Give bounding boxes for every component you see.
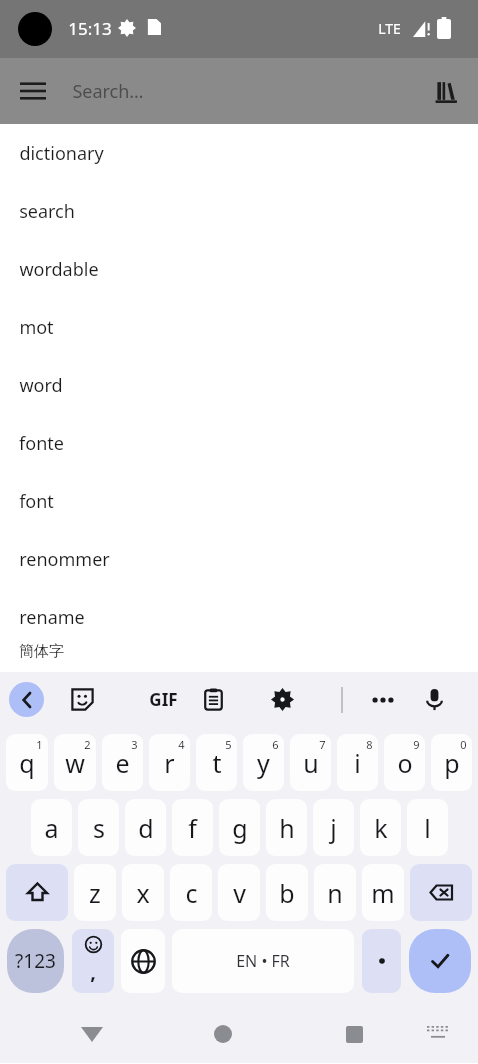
button[interactable]: k bbox=[360, 799, 401, 856]
staticText: n bbox=[327, 876, 343, 910]
button[interactable]: c bbox=[170, 864, 212, 921]
button[interactable]: Emoji and comma bbox=[72, 929, 114, 993]
staticText: wordable bbox=[19, 257, 99, 282]
button[interactable]: r bbox=[149, 734, 190, 791]
button[interactable]: Recent apps bbox=[330, 1010, 378, 1058]
staticText: 9 bbox=[413, 737, 420, 752]
staticText: 7 bbox=[319, 737, 326, 752]
button[interactable]: EN • FR bbox=[172, 929, 354, 993]
staticText: m bbox=[371, 876, 395, 910]
button[interactable]: fonte bbox=[0, 414, 478, 472]
button[interactable]: Clipboard bbox=[196, 682, 231, 717]
button[interactable]: Library bbox=[416, 58, 478, 124]
button[interactable]: Change language bbox=[121, 929, 165, 993]
staticText: s bbox=[93, 811, 105, 845]
button[interactable]: mot bbox=[0, 298, 478, 356]
staticText: 1 bbox=[36, 737, 43, 752]
button[interactable]: e bbox=[102, 734, 143, 791]
staticText: font bbox=[19, 489, 54, 514]
staticText: , bbox=[90, 958, 96, 985]
staticText: p bbox=[444, 746, 460, 780]
staticText: word bbox=[19, 373, 63, 398]
staticText: b bbox=[279, 876, 295, 910]
button[interactable]: ?123 bbox=[7, 929, 64, 993]
button[interactable]: g bbox=[219, 799, 260, 856]
button[interactable]: u bbox=[290, 734, 331, 791]
staticText: u bbox=[303, 746, 319, 780]
staticText: 15:13 bbox=[68, 17, 112, 40]
staticText: 4 bbox=[178, 737, 185, 752]
staticText: z bbox=[89, 876, 101, 910]
button[interactable]: w bbox=[54, 734, 96, 791]
staticText: dictionary bbox=[19, 141, 104, 166]
button[interactable]: j bbox=[313, 799, 354, 856]
button[interactable]: f bbox=[172, 799, 213, 856]
button[interactable]: s bbox=[78, 799, 119, 856]
staticText: g bbox=[232, 811, 248, 845]
staticText: renommer bbox=[19, 547, 110, 572]
button[interactable]: Shift bbox=[6, 864, 68, 921]
button[interactable]: Voice input bbox=[417, 682, 452, 717]
button[interactable]: a bbox=[31, 799, 72, 856]
button[interactable]: x bbox=[122, 864, 164, 921]
staticText: 3 bbox=[131, 737, 138, 752]
staticText: j bbox=[330, 811, 337, 845]
button[interactable]: search bbox=[0, 182, 478, 240]
button[interactable]: GIF bbox=[140, 682, 186, 717]
button[interactable]: wordable bbox=[0, 240, 478, 298]
button[interactable]: dictionary bbox=[0, 124, 478, 182]
button[interactable]: v bbox=[218, 864, 260, 921]
button[interactable]: h bbox=[266, 799, 307, 856]
button[interactable]: Back bbox=[9, 682, 44, 717]
staticText: rename bbox=[19, 605, 85, 630]
button[interactable]: More options bbox=[364, 682, 402, 717]
staticText: x bbox=[136, 876, 150, 910]
staticText: y bbox=[257, 746, 270, 780]
staticText: i bbox=[354, 746, 361, 780]
button[interactable]: q bbox=[6, 734, 48, 791]
button[interactable]: 簡体字 bbox=[0, 646, 478, 672]
staticText: h bbox=[279, 811, 295, 845]
button[interactable]: word bbox=[0, 356, 478, 414]
staticText: 2 bbox=[84, 737, 91, 752]
button[interactable]: n bbox=[314, 864, 356, 921]
button[interactable]: m bbox=[362, 864, 404, 921]
button[interactable]: l bbox=[407, 799, 448, 856]
button[interactable]: Search… bbox=[66, 58, 416, 124]
button[interactable]: Enter bbox=[409, 929, 471, 993]
staticText: mot bbox=[19, 315, 54, 340]
button[interactable]: renommer bbox=[0, 530, 478, 588]
button[interactable]: rename bbox=[0, 588, 478, 646]
staticText: e bbox=[115, 746, 130, 780]
staticText: o bbox=[397, 746, 413, 780]
staticText: GIF bbox=[149, 688, 178, 711]
button[interactable]: z bbox=[74, 864, 116, 921]
staticText: w bbox=[65, 746, 85, 780]
button[interactable]: y bbox=[243, 734, 284, 791]
button[interactable]: t bbox=[196, 734, 237, 791]
staticText: fonte bbox=[19, 431, 64, 456]
button[interactable] bbox=[362, 929, 401, 993]
button[interactable]: p bbox=[431, 734, 472, 791]
button[interactable]: b bbox=[266, 864, 308, 921]
button[interactable]: Backspace bbox=[410, 864, 472, 921]
button[interactable]: d bbox=[125, 799, 166, 856]
button[interactable]: Settings bbox=[265, 682, 300, 717]
staticText: r bbox=[164, 746, 175, 780]
staticText: EN • FR bbox=[236, 950, 290, 972]
button[interactable]: font bbox=[0, 472, 478, 530]
button[interactable]: Hide keyboard bbox=[416, 1012, 460, 1056]
staticText: ?123 bbox=[15, 948, 56, 974]
button[interactable]: i bbox=[337, 734, 378, 791]
staticText: k bbox=[374, 811, 388, 845]
button[interactable]: Open navigation menu bbox=[0, 58, 66, 124]
staticText: q bbox=[19, 746, 35, 780]
button[interactable]: o bbox=[384, 734, 425, 791]
staticText: Search… bbox=[72, 79, 144, 104]
staticText: v bbox=[233, 876, 246, 910]
button[interactable]: Stickers bbox=[65, 682, 100, 717]
button[interactable]: Back bbox=[68, 1010, 116, 1058]
staticText: c bbox=[185, 876, 198, 910]
button[interactable]: Home bbox=[199, 1010, 247, 1058]
staticText: d bbox=[138, 811, 154, 845]
